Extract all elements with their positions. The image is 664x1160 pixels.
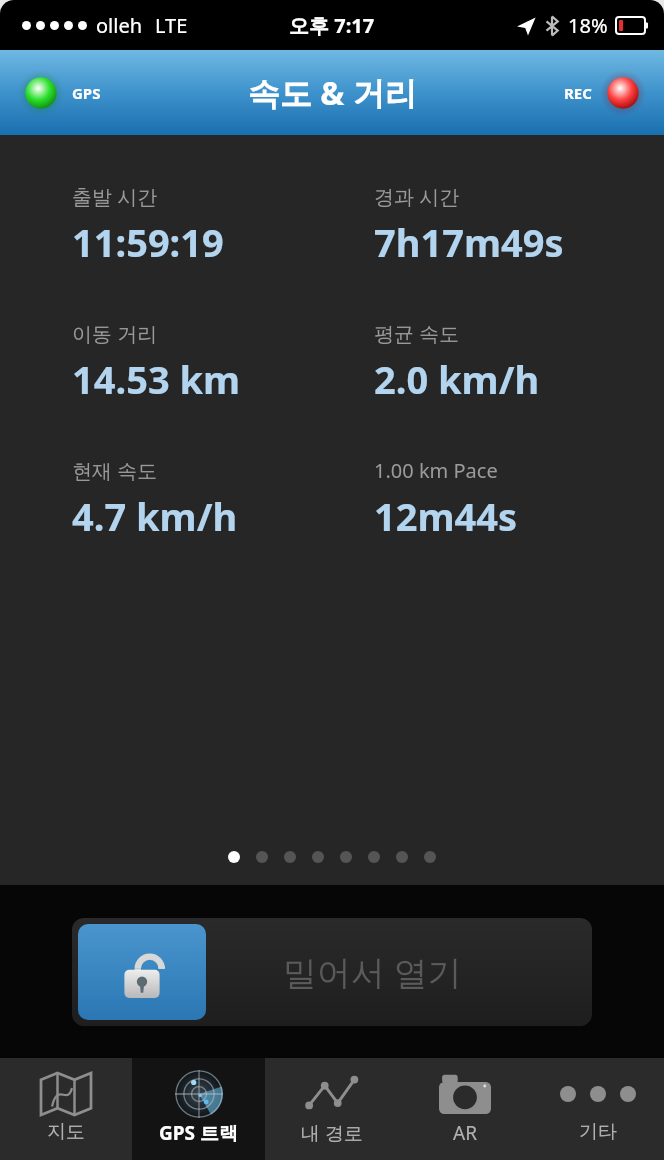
button[interactable]: 기타 (531, 1058, 664, 1160)
staticText: GPS (72, 83, 101, 103)
staticText: 14.53 km (72, 353, 241, 405)
staticText: 밀어서 열기 (283, 949, 462, 995)
staticText: olleh (96, 12, 143, 39)
staticText: 평균 속도 (374, 320, 460, 347)
staticText: 12m44s (374, 490, 518, 542)
staticText: 11:59:19 (72, 216, 224, 268)
staticText: 지도 (47, 1120, 85, 1144)
staticText: 현재 속도 (72, 457, 158, 484)
staticText: 속도 & 거리 (248, 71, 417, 115)
staticText: 내 경로 (301, 1120, 363, 1146)
button[interactable]: GPS status (18, 70, 101, 116)
staticText: LTE (155, 12, 188, 39)
staticText: 오후 7:17 (289, 12, 375, 39)
staticText: 출발 시간 (72, 183, 158, 210)
staticText: 이동 거리 (72, 320, 158, 347)
button[interactable]: Record (564, 70, 646, 116)
staticText: 18% (568, 12, 608, 39)
staticText: 4.7 km/h (72, 490, 238, 542)
button[interactable]: 내 경로 (265, 1058, 398, 1160)
button[interactable]: GPS 트랙 (132, 1058, 265, 1160)
staticText: 7h17m49s (374, 216, 564, 268)
staticText: 경과 시간 (374, 183, 460, 210)
button[interactable]: 지도 (0, 1058, 132, 1160)
staticText: 기타 (579, 1120, 617, 1144)
button[interactable]: Unlock (78, 924, 206, 1020)
staticText: AR (453, 1120, 477, 1146)
staticText: GPS 트랙 (159, 1120, 238, 1146)
staticText: 2.0 km/h (374, 353, 540, 405)
staticText: 1.00 km Pace (374, 457, 498, 484)
button[interactable]: AR (398, 1058, 531, 1160)
button[interactable]: 밀어서 열기 (72, 918, 592, 1026)
staticText: REC (564, 83, 592, 103)
